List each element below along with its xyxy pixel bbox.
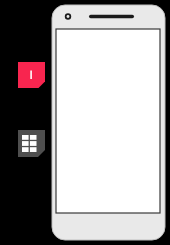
- button[interactable]: SIM card: [0, 0, 170, 245]
- button[interactable]: Phone: [0, 0, 170, 245]
- button[interactable]: SIM card chip: [0, 0, 170, 245]
